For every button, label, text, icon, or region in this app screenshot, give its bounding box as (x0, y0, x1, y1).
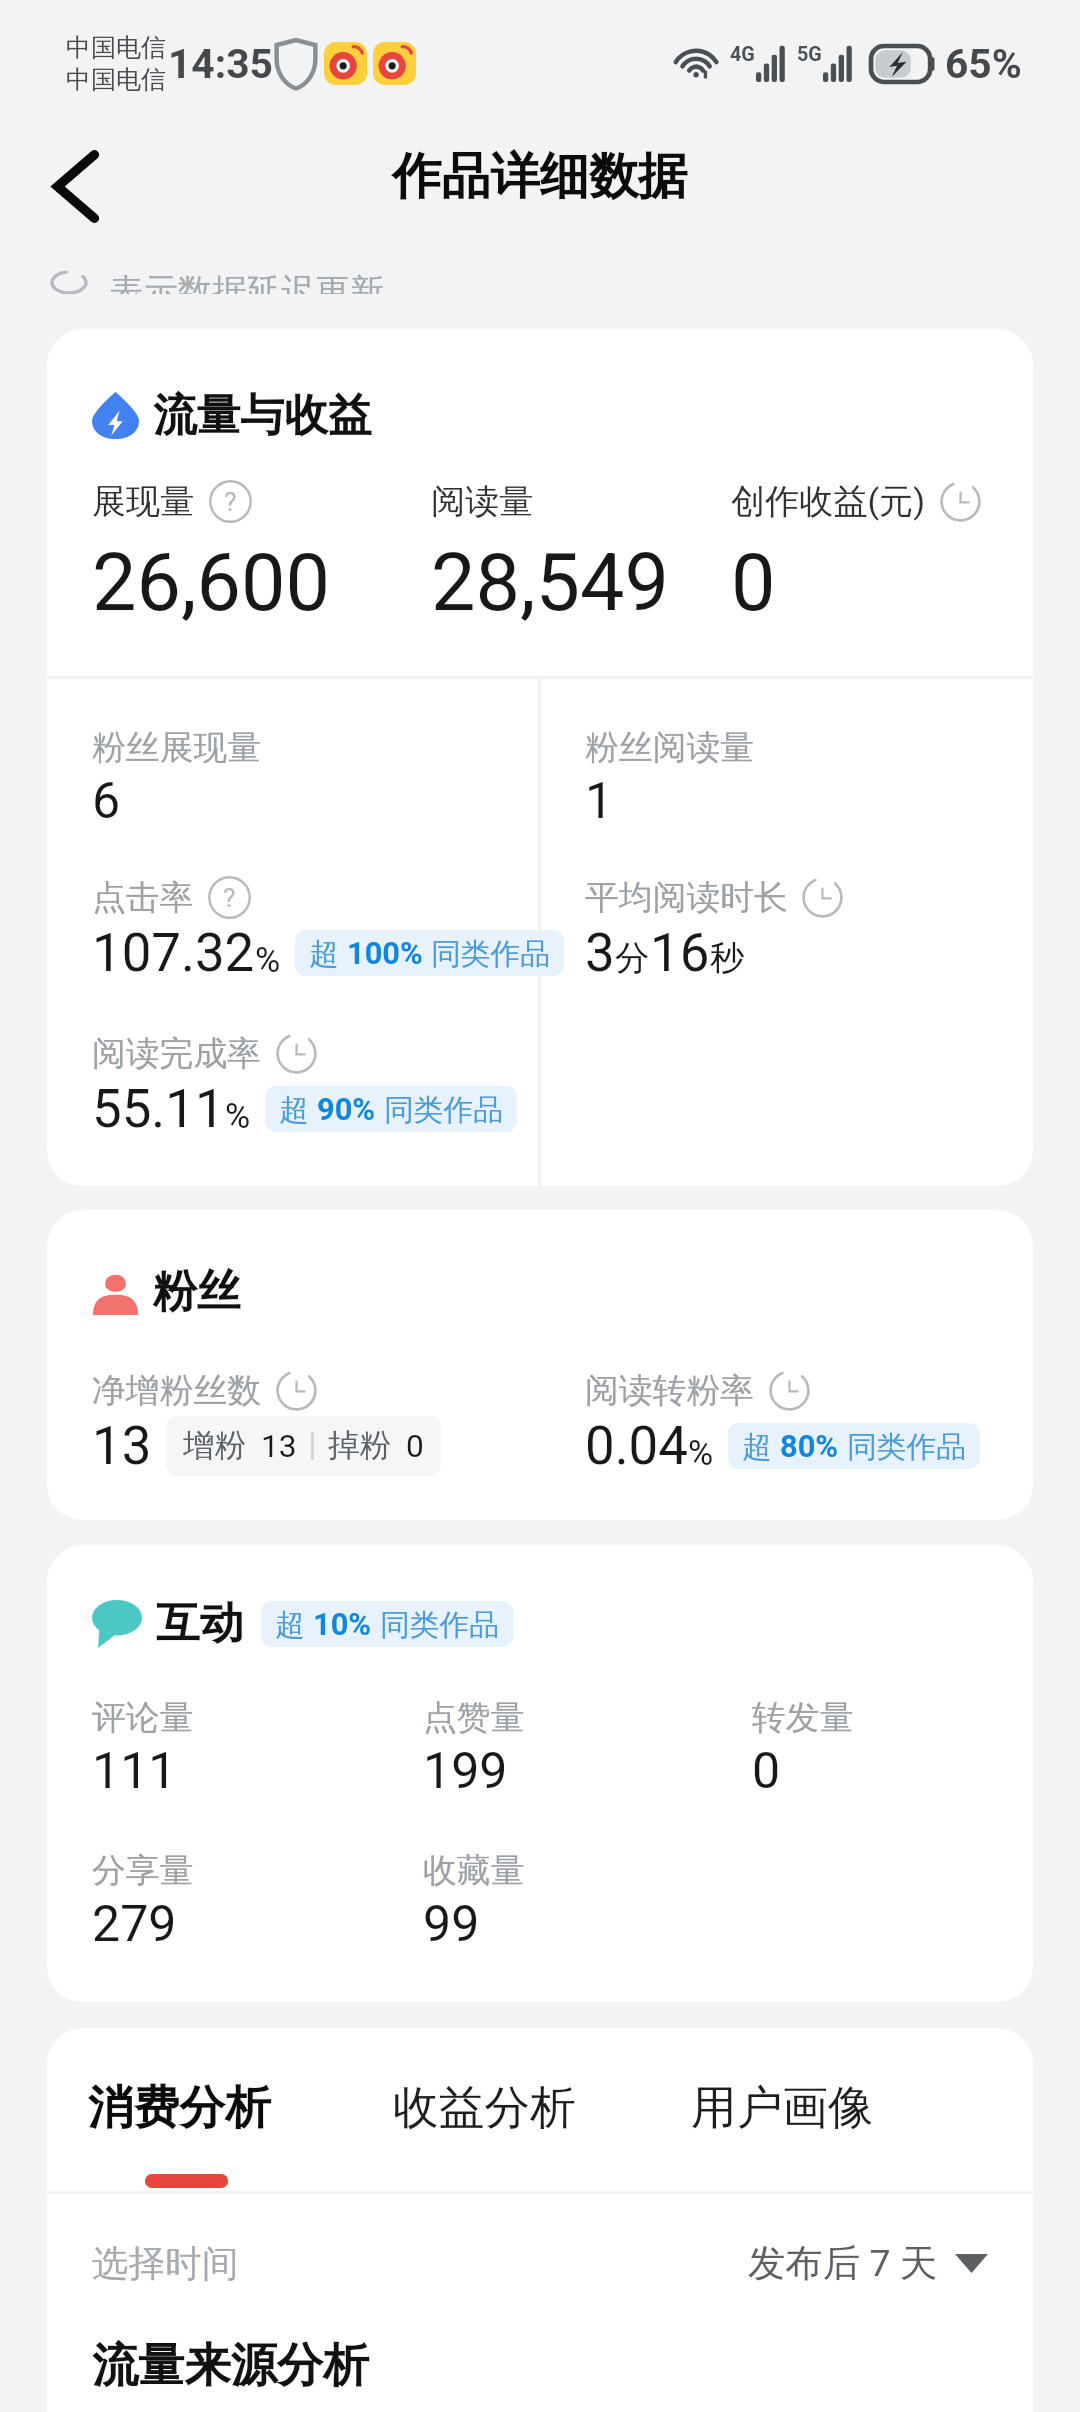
staticText: 掉粉 (328, 1426, 392, 1466)
staticText: 互动 (156, 1596, 244, 1651)
staticText: 13 (92, 1415, 152, 1477)
staticText: 28,549 (431, 537, 670, 630)
staticText: 消费分析 (88, 2079, 271, 2137)
staticText: 0 (731, 537, 776, 630)
staticText: 分享量 (92, 1849, 194, 1892)
staticText: 99 (423, 1895, 480, 1954)
staticText: 选择时间 (92, 2241, 239, 2287)
staticText: 111 (92, 1742, 177, 1801)
button[interactable]: 消费分析 (60, 2079, 299, 2191)
staticText: 超 (275, 1606, 305, 1643)
staticText: 超 (279, 1091, 309, 1128)
button[interactable]: Back (15, 126, 136, 247)
staticText: 阅读量 (431, 480, 534, 523)
staticText: 收藏量 (423, 1849, 525, 1892)
staticText: 14:35 (168, 40, 273, 88)
staticText: 1 (585, 772, 614, 831)
staticText: 同类作品 (384, 1091, 503, 1128)
staticText: 199 (423, 1742, 508, 1801)
staticText: 65% (945, 40, 1022, 88)
staticText: 279 (92, 1895, 177, 1954)
staticText: 80% (780, 1428, 839, 1464)
staticText: 阅读完成率 (92, 1032, 262, 1075)
staticText: 26,600 (92, 537, 331, 630)
staticText: % (688, 1433, 714, 1473)
staticText: 5G (797, 43, 822, 66)
staticText: 同类作品 (380, 1606, 499, 1643)
staticText: ? (223, 882, 236, 913)
staticText: 平均阅读时长 (585, 876, 788, 919)
staticText: 0 (752, 1742, 781, 1801)
staticText: 增粉 (183, 1426, 247, 1466)
staticText: 超 (309, 935, 339, 972)
staticText: 55.11 (92, 1078, 225, 1140)
staticText: 净增粉丝数 (92, 1369, 262, 1412)
staticText: 流量与收益 (153, 388, 372, 443)
staticText: 4G (730, 43, 755, 66)
staticText: 粉丝展现量 (92, 726, 262, 769)
staticText: 转发量 (752, 1696, 854, 1739)
staticText: 90% (317, 1091, 376, 1127)
button[interactable]: 用户画像 (663, 2079, 902, 2191)
staticText: 点赞量 (423, 1696, 525, 1739)
staticText: 阅读转粉率 (585, 1369, 755, 1412)
staticText: 秒 (710, 937, 745, 980)
staticText: 分 (615, 937, 650, 980)
staticText: 表示数据延迟更新 (109, 270, 384, 294)
staticText: 0.04 (585, 1415, 688, 1477)
staticText: 中国电信 (66, 64, 167, 96)
staticText: 超 (742, 1428, 772, 1465)
staticText: % (225, 1096, 251, 1136)
staticText: 创作收益(元) (731, 480, 926, 523)
staticText: 粉丝 (153, 1264, 241, 1319)
staticText: 作品详细数据 (392, 146, 688, 208)
staticText: 同类作品 (431, 935, 550, 972)
staticText: 评论量 (92, 1696, 194, 1739)
staticText: 16 (650, 922, 710, 984)
button[interactable]: 发布后 7 天 (748, 2240, 988, 2287)
staticText: 流量来源分析 (92, 2337, 370, 2395)
staticText: 粉丝阅读量 (585, 726, 755, 769)
staticText: 点击率 (92, 876, 194, 919)
staticText: 100% (347, 935, 423, 971)
staticText: 发布后 7 天 (748, 2240, 938, 2287)
staticText: 中国电信 (66, 32, 167, 64)
staticText: 收益分析 (393, 2079, 576, 2137)
staticText: 3 (585, 922, 615, 984)
staticText: 展现量 (92, 480, 195, 523)
staticText: 6 (92, 772, 121, 831)
staticText: ? (224, 486, 237, 517)
staticText: 13 (261, 1428, 297, 1465)
staticText: 107.32 (92, 922, 255, 984)
staticText: 用户画像 (691, 2079, 874, 2137)
staticText: % (255, 940, 281, 980)
staticText: 同类作品 (847, 1428, 966, 1465)
button[interactable]: 收益分析 (365, 2079, 604, 2191)
staticText: 0 (406, 1428, 424, 1465)
staticText: 10% (313, 1606, 372, 1642)
